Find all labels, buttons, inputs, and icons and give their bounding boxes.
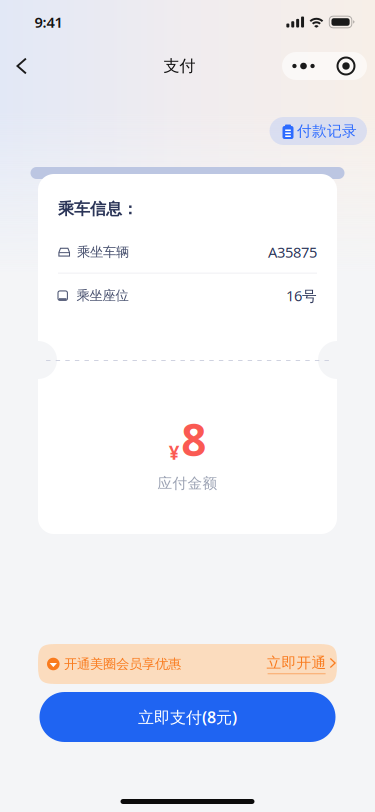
- staticText: 开通美圈会员享优惠: [64, 656, 181, 672]
- staticText: A35875: [268, 242, 317, 262]
- button[interactable]: More: [282, 52, 325, 80]
- staticText: 乘坐座位: [76, 287, 128, 304]
- staticText: 立即开通: [267, 654, 327, 672]
- button[interactable]: 立即支付(8元): [39, 692, 335, 742]
- staticText: 立即支付(8元): [138, 706, 237, 728]
- staticText: 付款记录: [297, 122, 357, 140]
- staticText: 8: [181, 410, 206, 468]
- staticText: 支付: [163, 56, 195, 76]
- staticText: 乘坐车辆: [77, 244, 129, 260]
- button[interactable]: 开通美圈会员享优惠: [38, 644, 337, 684]
- staticText: 16号: [286, 286, 317, 305]
- staticText: 乘车信息：: [58, 199, 138, 219]
- button[interactable]: Back: [0, 44, 41, 88]
- button[interactable]: Close: [325, 52, 367, 80]
- staticText: ¥: [169, 440, 180, 465]
- staticText: 9:41: [34, 12, 62, 32]
- button[interactable]: 付款记录: [269, 117, 367, 145]
- staticText: 应付金额: [157, 474, 217, 492]
